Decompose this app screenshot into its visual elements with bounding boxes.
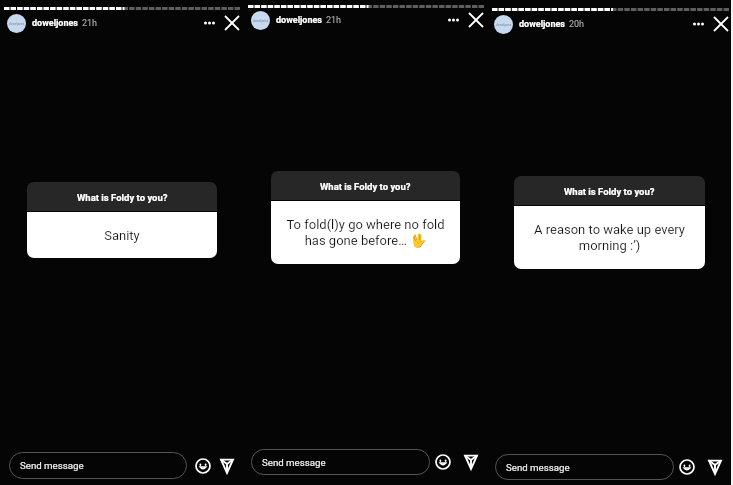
button[interactable]: Close bbox=[711, 14, 731, 34]
button[interactable]: Profile photo bbox=[251, 11, 270, 30]
staticText: What is Foldy to you? bbox=[320, 181, 411, 192]
staticText: doweljones bbox=[253, 19, 269, 23]
staticText: doweljones bbox=[32, 18, 78, 29]
button[interactable]: Profile photo bbox=[494, 15, 513, 34]
button[interactable]: Send message bbox=[495, 454, 674, 480]
button[interactable]: Share bbox=[705, 457, 725, 477]
button[interactable]: More options bbox=[199, 13, 219, 33]
button[interactable]: Send message bbox=[251, 449, 430, 475]
button[interactable]: What is Foldy to you? bbox=[514, 176, 705, 269]
button[interactable]: Share bbox=[217, 456, 237, 476]
staticText: Send message bbox=[262, 457, 326, 468]
button[interactable]: Close bbox=[466, 10, 486, 30]
staticText: 21h bbox=[82, 18, 98, 29]
staticText: Send message bbox=[506, 462, 570, 473]
button[interactable]: Close bbox=[222, 13, 242, 33]
button[interactable]: Send a reaction bbox=[433, 452, 453, 472]
staticText: What is Foldy to you? bbox=[77, 192, 168, 203]
button[interactable]: Send a reaction bbox=[193, 456, 213, 476]
staticText: To fold(l)y go where no fold has gone be… bbox=[279, 217, 452, 248]
button[interactable]: What is Foldy to you? bbox=[271, 171, 460, 264]
staticText: doweljones bbox=[9, 22, 25, 26]
staticText: 21h bbox=[326, 15, 342, 26]
staticText: Send message bbox=[20, 460, 84, 471]
button[interactable]: Send message bbox=[9, 452, 187, 479]
staticText: 20h bbox=[569, 19, 585, 30]
button[interactable]: Send a reaction bbox=[677, 457, 697, 477]
button[interactable]: More options bbox=[688, 14, 708, 34]
staticText: What is Foldy to you? bbox=[564, 186, 655, 197]
button[interactable]: More options bbox=[443, 10, 463, 30]
staticText: doweljones bbox=[276, 15, 322, 26]
staticText: doweljones bbox=[496, 23, 512, 27]
button[interactable]: What is Foldy to you? bbox=[27, 182, 217, 258]
staticText: Sanity bbox=[35, 228, 209, 243]
button[interactable]: Profile photo bbox=[7, 14, 26, 33]
staticText: A reason to wake up every morning :’) bbox=[522, 222, 697, 253]
button[interactable]: Share bbox=[461, 452, 481, 472]
staticText: doweljones bbox=[519, 19, 565, 30]
